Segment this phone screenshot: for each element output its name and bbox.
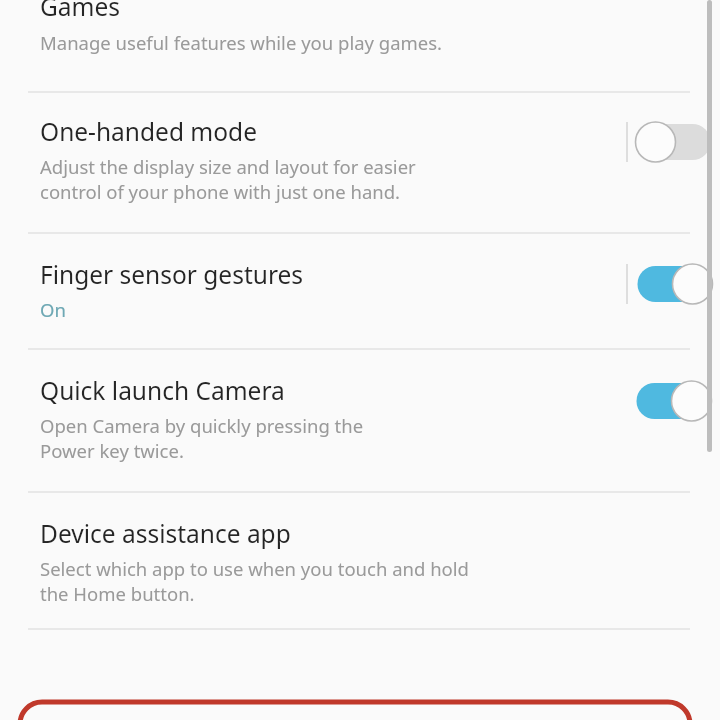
staticText: Finger sensor gestures	[40, 258, 304, 291]
staticText: Select which app to use when you touch a…	[40, 556, 469, 581]
staticText: On	[40, 297, 66, 322]
staticText: control of your phone with just one hand…	[40, 179, 401, 204]
button[interactable]: One-handed mode	[0, 93, 720, 204]
button[interactable]: Quick launch Camera toggle	[627, 378, 719, 424]
button[interactable]: Device assistance app	[0, 493, 720, 606]
staticText: Open Camera by quickly pressing the	[40, 413, 364, 438]
staticText: Manage useful features while you play ga…	[40, 30, 443, 55]
staticText: Power key twice.	[40, 438, 184, 463]
staticText: Device assistance app	[40, 517, 291, 550]
button[interactable]: One-handed mode toggle	[628, 119, 720, 165]
staticText: Games	[40, 0, 121, 23]
staticText: the Home button.	[40, 581, 195, 606]
staticText: Adjust the display size and layout for e…	[40, 154, 416, 179]
button[interactable]: Games	[0, 0, 720, 65]
button[interactable]: Finger sensor gestures toggle	[628, 261, 720, 307]
button[interactable]: Quick launch Camera	[0, 350, 720, 463]
staticText: One-handed mode	[40, 115, 257, 148]
staticText: Quick launch Camera	[40, 374, 285, 407]
button[interactable]: Finger sensor gestures	[0, 234, 720, 322]
